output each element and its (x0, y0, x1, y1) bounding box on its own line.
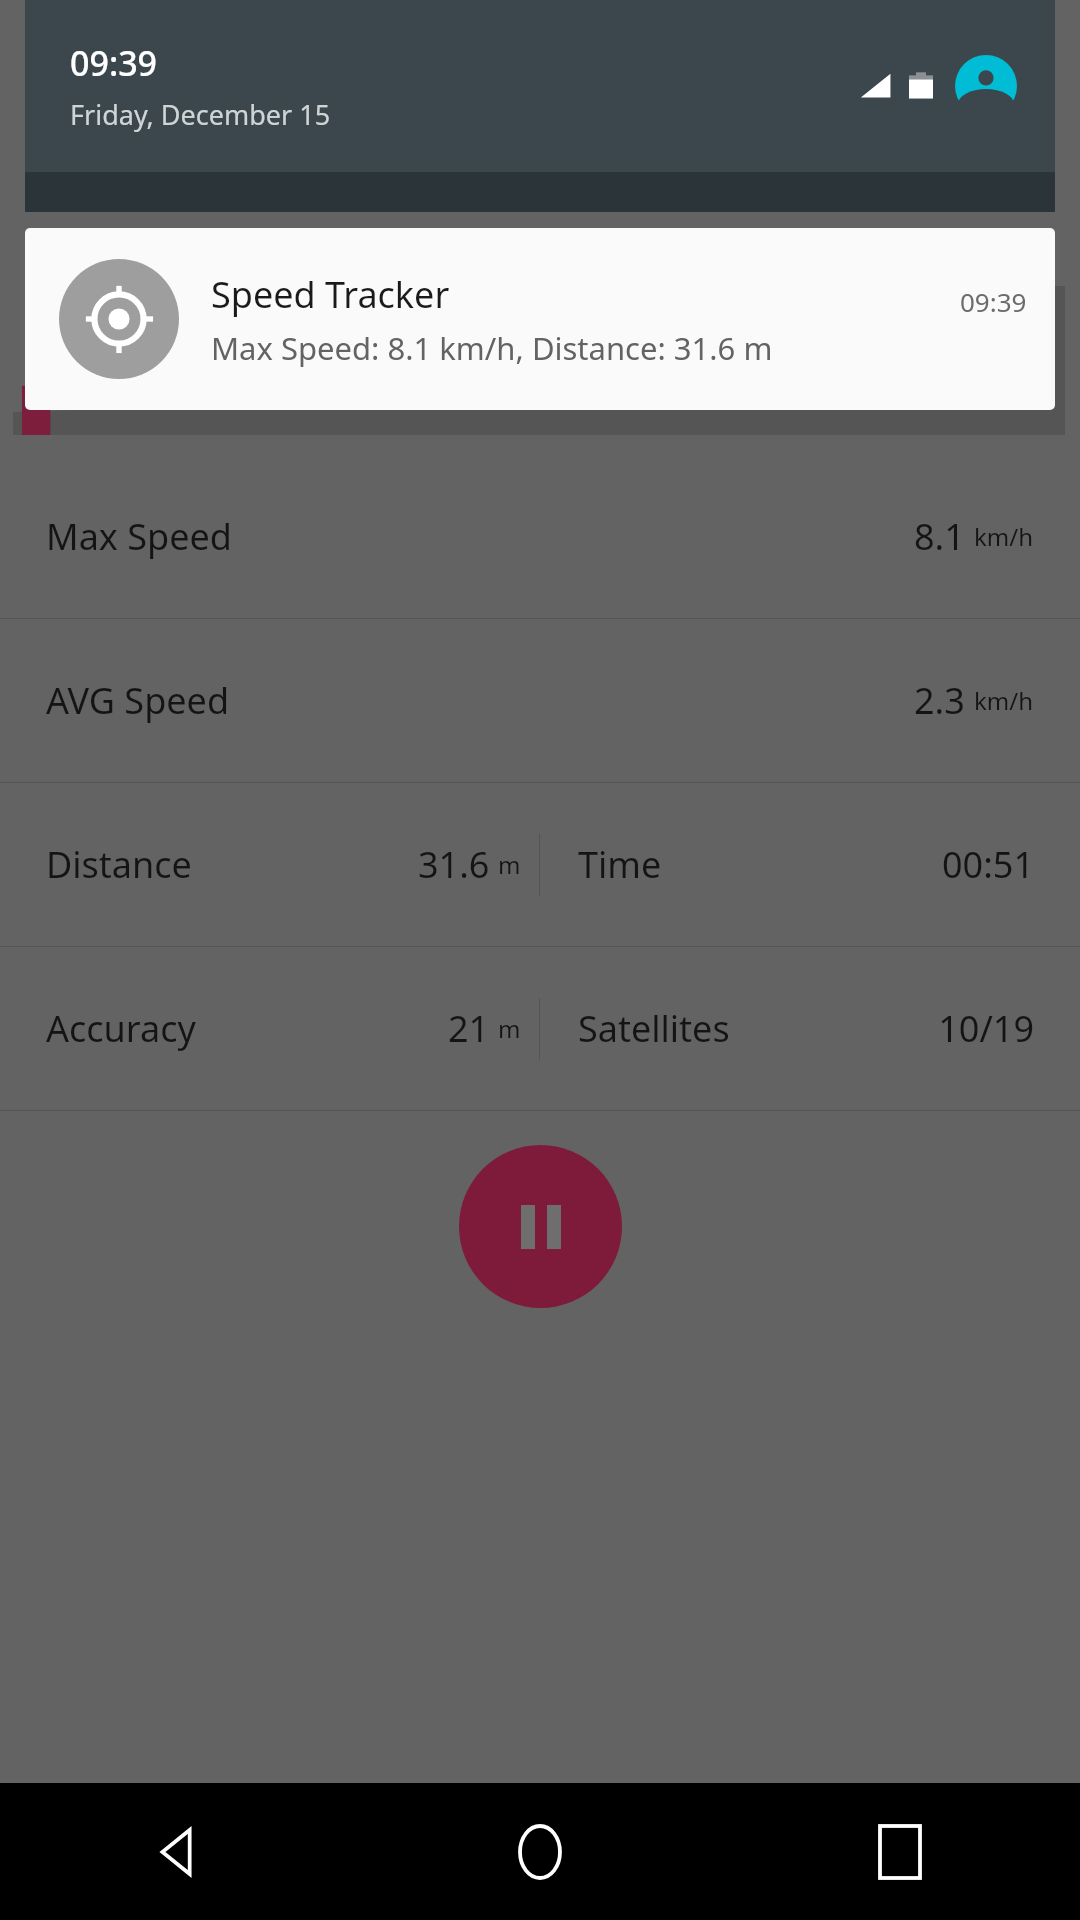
staticText: 8.1 (513, 300, 566, 350)
staticText: 10/19 (938, 1004, 1034, 1053)
staticText: Max Speed (46, 512, 914, 561)
staticText: m (498, 1012, 521, 1045)
staticText: 2.3 (914, 676, 965, 725)
staticText: km/h (494, 350, 585, 400)
staticText: 31.6 (418, 840, 490, 889)
button[interactable]: User account (955, 55, 1017, 117)
button[interactable]: Satellites (540, 947, 1080, 1110)
button[interactable]: AVG Speed (0, 619, 1080, 782)
button[interactable]: Distance (0, 783, 539, 946)
staticText: Distance (46, 840, 418, 889)
staticText: km/h (974, 684, 1034, 717)
staticText: 21 (448, 1004, 490, 1053)
staticText: AVG Speed (46, 676, 914, 725)
button[interactable]: Speed Tracker (25, 228, 1055, 410)
staticText: 09:39 (960, 284, 1027, 319)
button[interactable]: Back (0, 1783, 360, 1920)
staticText: Friday, December 15 (70, 96, 331, 133)
staticText: 8.1 (914, 512, 965, 561)
staticText: Speed Tracker (211, 270, 960, 319)
button[interactable]: Recents (720, 1783, 1080, 1920)
button[interactable]: Accuracy (0, 947, 539, 1110)
button[interactable]: Home (360, 1783, 720, 1920)
staticText: Max Speed: 8.1 km/h, Distance: 31.6 m (211, 327, 773, 369)
staticText: Accuracy (46, 1004, 448, 1053)
staticText: Satellites (578, 1004, 938, 1053)
staticText: km/h (974, 520, 1034, 553)
staticText: 09:39 (70, 40, 158, 86)
button[interactable]: Pause (459, 1145, 622, 1308)
button[interactable]: Time (540, 783, 1080, 946)
staticText: 00:51 (941, 840, 1034, 889)
button[interactable]: Max Speed (0, 455, 1080, 618)
staticText: m (498, 848, 521, 881)
staticText: Time (578, 840, 941, 889)
